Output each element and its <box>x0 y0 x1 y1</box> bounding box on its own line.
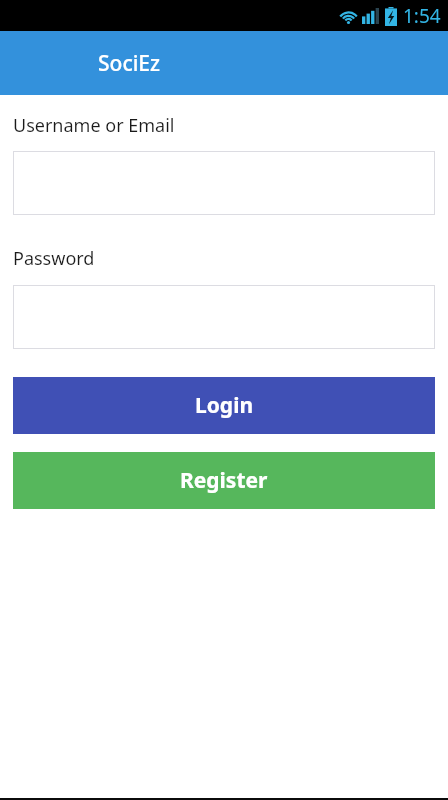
button[interactable] <box>13 285 435 349</box>
staticText: Password <box>13 246 95 271</box>
staticText: 1:54 <box>403 3 441 29</box>
button[interactable]: Login <box>13 377 435 434</box>
staticText: Login <box>195 391 254 420</box>
button[interactable] <box>13 151 435 215</box>
button[interactable]: Register <box>13 452 435 509</box>
staticText: Username or Email <box>13 113 175 138</box>
staticText: SociEz <box>98 49 161 78</box>
staticText: Register <box>180 466 268 495</box>
